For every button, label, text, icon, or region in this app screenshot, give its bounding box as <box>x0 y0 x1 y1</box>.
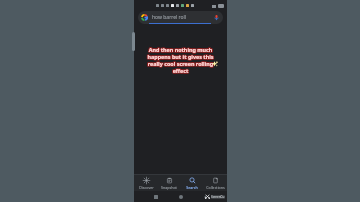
staticText: And then nothing much happens but it giv… <box>141 46 220 74</box>
button[interactable]: how barrel roll <box>138 11 223 24</box>
button[interactable]: Back <box>203 195 207 199</box>
staticText: And then nothing much happens but it giv… <box>142 46 221 74</box>
button[interactable]: Discover <box>135 176 157 191</box>
staticText: And then nothing much happens but it giv… <box>141 45 220 73</box>
staticText: And then nothing much happens but it giv… <box>140 45 219 73</box>
staticText: how barrel roll <box>152 14 211 21</box>
other: Voice search <box>213 14 220 21</box>
staticText: Discover <box>139 185 154 190</box>
staticText: And then nothing much happens but it giv… <box>142 46 221 74</box>
staticText: And then nothing much happens but it giv… <box>141 47 220 75</box>
button[interactable]: Home <box>179 195 183 199</box>
button[interactable]: Snapshot <box>158 176 180 191</box>
staticText: And then nothing much happens but it giv… <box>140 46 219 74</box>
button[interactable]: Collections <box>204 176 226 191</box>
staticText: And then nothing much happens but it giv… <box>140 47 219 75</box>
staticText: And then nothing much happens but it giv… <box>142 47 221 75</box>
staticText: And then nothing much happens but it giv… <box>141 47 220 75</box>
staticText: Snapshot <box>161 185 177 190</box>
button[interactable]: Recents <box>154 195 158 199</box>
staticText: Search <box>186 185 198 190</box>
staticText: ScreenCut <box>211 195 225 199</box>
staticText: And then nothing much happens but it giv… <box>140 46 219 74</box>
staticText: Collections <box>206 185 225 190</box>
button[interactable]: Search <box>181 176 203 191</box>
staticText: And then nothing much happens but it giv… <box>142 45 221 73</box>
staticText: And then nothing much happens but it giv… <box>141 45 220 73</box>
